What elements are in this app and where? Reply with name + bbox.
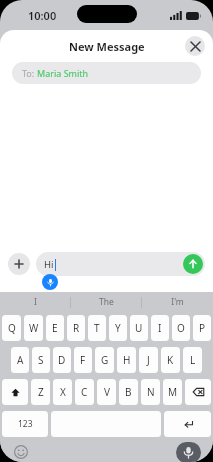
staticText: W — [29, 321, 39, 335]
button[interactable]: G — [95, 347, 114, 373]
button[interactable]: Shift — [2, 379, 28, 405]
button[interactable]: H — [117, 347, 136, 373]
button[interactable]: L — [183, 347, 202, 373]
button[interactable]: P — [193, 315, 211, 341]
staticText: M — [168, 385, 178, 399]
staticText: E — [52, 321, 58, 335]
staticText: T — [94, 321, 100, 335]
staticText: The — [99, 296, 114, 308]
staticText: I — [158, 321, 162, 335]
button[interactable]: V — [97, 379, 116, 405]
staticText: K — [167, 353, 174, 367]
staticText: S — [38, 353, 44, 367]
button[interactable]: Send — [183, 254, 203, 274]
staticText: C — [81, 385, 88, 399]
button[interactable]: I — [151, 315, 169, 341]
staticText: New Message — [69, 39, 145, 54]
staticText: O — [177, 321, 185, 335]
button[interactable]: X — [53, 379, 72, 405]
staticText: H — [123, 353, 131, 367]
button[interactable]: Y — [109, 315, 127, 341]
button[interactable]: T — [88, 315, 106, 341]
button[interactable]: Backspace — [185, 379, 211, 405]
staticText: Q — [8, 321, 16, 335]
button[interactable]: Dictation — [176, 442, 201, 462]
staticText: P — [199, 321, 206, 335]
staticText: L — [190, 353, 196, 367]
staticText: Maria Smith — [37, 67, 89, 79]
button[interactable]: K — [161, 347, 180, 373]
button[interactable]: R — [67, 315, 85, 341]
staticText: Hi — [44, 258, 54, 271]
button[interactable]: To: — [12, 62, 201, 84]
button[interactable]: A — [11, 347, 29, 373]
staticText: X — [60, 385, 66, 399]
staticText: D — [58, 353, 66, 367]
staticText: A — [17, 353, 24, 367]
staticText: U — [135, 321, 143, 335]
staticText: 123 — [18, 418, 33, 430]
button[interactable]: Close — [185, 36, 205, 56]
button[interactable]: B — [119, 379, 138, 405]
button[interactable]: C — [75, 379, 94, 405]
staticText: F — [80, 353, 86, 367]
button[interactable]: Emoji — [14, 445, 28, 459]
staticText: Z — [38, 385, 44, 399]
staticText: J — [147, 353, 150, 367]
staticText: G — [101, 353, 109, 367]
staticText: 10:00 — [28, 8, 57, 23]
button[interactable]: J — [139, 347, 158, 373]
staticText: R — [73, 321, 80, 335]
button[interactable]: Add attachment — [8, 253, 30, 275]
staticText: To: — [22, 67, 37, 79]
button[interactable]: W — [24, 315, 43, 341]
button[interactable]: F — [74, 347, 92, 373]
button[interactable]: The — [71, 292, 142, 312]
button[interactable]: D — [53, 347, 71, 373]
staticText: I'm — [171, 296, 184, 308]
button[interactable]: N — [141, 379, 160, 405]
button[interactable]: 123 — [2, 411, 48, 437]
button[interactable]: Hi — [36, 252, 205, 276]
button[interactable]: Q — [2, 315, 21, 341]
staticText: V — [104, 385, 110, 399]
button[interactable]: S — [32, 347, 50, 373]
button[interactable]: I'm — [142, 292, 213, 312]
button[interactable]: U — [130, 315, 148, 341]
staticText: Y — [115, 321, 121, 335]
button[interactable]: E — [46, 315, 64, 341]
button[interactable]: Z — [31, 379, 50, 405]
button[interactable]: I — [0, 292, 71, 312]
staticText: B — [125, 385, 132, 399]
button[interactable]: Dictate — [42, 274, 58, 290]
staticText: I — [34, 296, 37, 308]
button[interactable]: M — [163, 379, 182, 405]
staticText: N — [147, 385, 155, 399]
button[interactable]: Return — [164, 411, 211, 437]
button[interactable]: O — [172, 315, 190, 341]
